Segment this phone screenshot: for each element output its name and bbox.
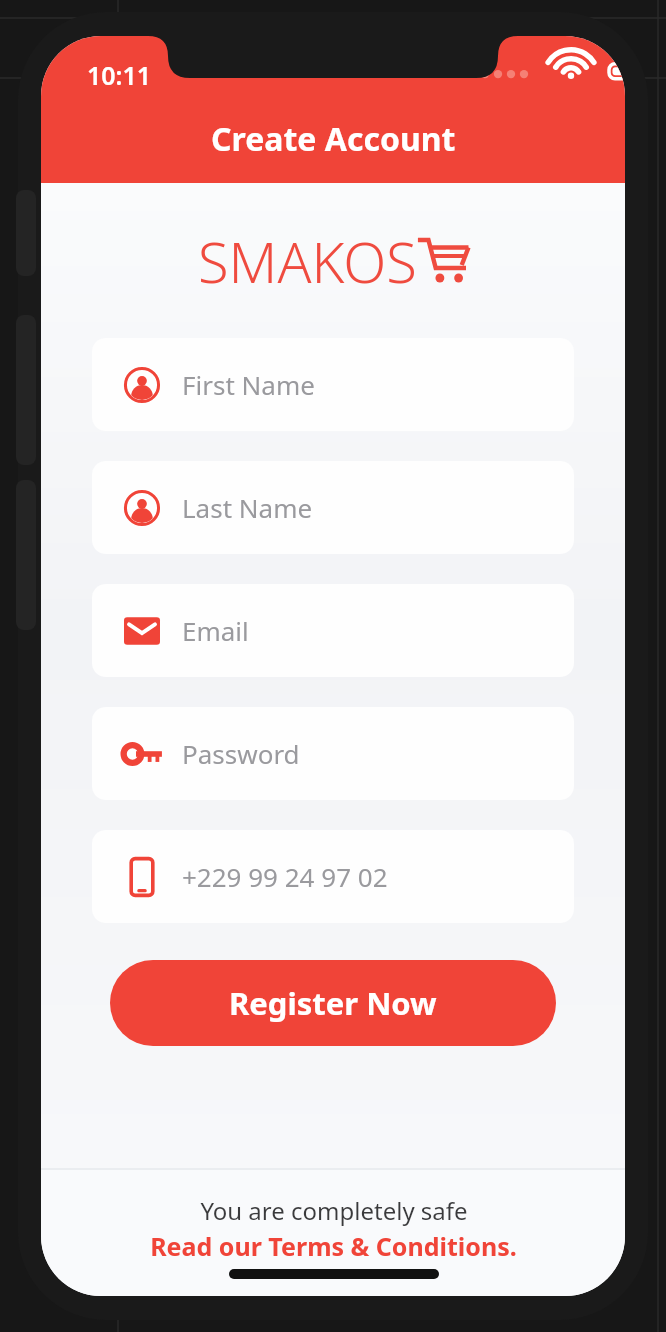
- staticText: 10:11: [87, 58, 152, 92]
- staticText: Email: [182, 613, 249, 648]
- staticText: Last Name: [182, 490, 313, 525]
- button[interactable]: Register Now: [110, 960, 556, 1046]
- staticText: Password: [182, 736, 300, 771]
- staticText: SMAKOS: [198, 223, 417, 299]
- button[interactable]: Email: [92, 584, 574, 677]
- button[interactable]: +229 99 24 97 02: [92, 830, 574, 923]
- staticText: Register Now: [229, 982, 437, 1024]
- staticText: Read our Terms & Conditions.: [150, 1229, 517, 1263]
- button[interactable]: Password: [92, 707, 574, 800]
- staticText: Create Account: [211, 117, 456, 161]
- button[interactable]: First Name: [92, 338, 574, 431]
- staticText: First Name: [182, 367, 315, 402]
- button[interactable]: Read our Terms & Conditions.: [150, 1229, 517, 1263]
- button[interactable]: Last Name: [92, 461, 574, 554]
- staticText: You are completely safe: [200, 1194, 468, 1227]
- other: Home indicator: [229, 1269, 439, 1279]
- staticText: +229 99 24 97 02: [182, 859, 388, 894]
